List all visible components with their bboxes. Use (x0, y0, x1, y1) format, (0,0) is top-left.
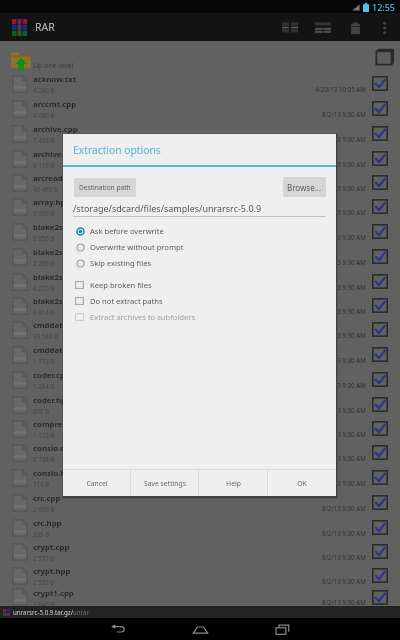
staticText: 1 264 B (33, 382, 55, 390)
staticText: 8/2/13 9:30 AM (322, 258, 366, 266)
button[interactable]: Cancel (63, 470, 130, 496)
staticText: Skip existing files (90, 258, 152, 268)
staticText: 8/2/13 9:30 AM (322, 598, 366, 606)
staticText: 4/20/13 10:05 AM (315, 85, 366, 93)
button[interactable]: Recents (260, 618, 304, 640)
staticText: consio.hpp (33, 468, 76, 479)
button[interactable]: arcread.cpp (0, 171, 400, 194)
staticText: 8/2/13 9:30 AM (322, 110, 366, 118)
staticText: OK (297, 479, 307, 488)
button[interactable]: Destination path (74, 178, 136, 197)
button[interactable]: compress.hpp (0, 417, 400, 440)
staticText: archive.cpp (33, 124, 78, 135)
button[interactable]: consio.hpp (0, 465, 400, 490)
staticText: archive.hpp (33, 149, 79, 160)
staticText: arcread.cpp (33, 173, 79, 184)
button[interactable]: crypt.hpp (0, 563, 400, 588)
button[interactable]: Help (199, 470, 267, 496)
staticText: cmddata.cpp (33, 320, 84, 331)
staticText: 8/2/13 9:30 AM (322, 577, 366, 585)
staticText: cmddata.hpp (33, 345, 85, 356)
button[interactable]: crc.hpp (0, 515, 400, 540)
button[interactable]: Sort (306, 14, 339, 41)
staticText: 8/2/13 9:30 AM (322, 529, 366, 537)
button[interactable]: acknow.txt (0, 71, 400, 96)
staticText: crc.hpp (33, 518, 62, 529)
button[interactable]: OK (268, 470, 336, 496)
staticText: acknow.txt (33, 74, 77, 85)
staticText: 4 080 B (33, 111, 55, 119)
button[interactable]: coder.cpp (0, 367, 400, 392)
staticText: crc.cpp (33, 493, 61, 504)
staticText: 8/2/13 9:30 AM (322, 208, 366, 216)
staticText: 8/2/13 9:30 AM (322, 233, 366, 241)
button[interactable]: Up one level (0, 41, 400, 71)
staticText: Save settings (144, 479, 186, 488)
button[interactable]: Delete (339, 14, 371, 41)
button[interactable]: coder.hpp (0, 392, 400, 417)
staticText: 8/2/13 9:30 AM (322, 283, 366, 291)
staticText: 8/2/13 9:30 AM (322, 381, 366, 389)
button[interactable]: Keep broken files (63, 277, 336, 293)
staticText: consio.cpp (33, 443, 75, 454)
button[interactable]: array.hpp (0, 194, 400, 219)
staticText: 7 468 B (33, 136, 55, 144)
staticText: unrarsrc-5.0.9.tar.gz/ (13, 608, 73, 616)
staticText: 8/2/13 9:30 AM (322, 430, 366, 438)
button[interactable]: Skip existing files (63, 255, 336, 271)
staticText: coder.cpp (33, 370, 70, 381)
button[interactable]: crc.cpp (0, 490, 400, 515)
staticText: Browse... (287, 182, 322, 193)
button[interactable]: archive.cpp (0, 121, 400, 146)
staticText: 1 640 B (33, 600, 55, 606)
staticText: Do not extract paths (90, 296, 163, 306)
staticText: Overwrite without prompt (90, 242, 184, 252)
button[interactable]: archive.hpp (0, 146, 400, 171)
button[interactable]: Save settings (131, 470, 198, 496)
button[interactable]: More options (371, 14, 397, 41)
button[interactable]: consio.cpp (0, 440, 400, 465)
staticText: 8/2/13 9:30 AM (322, 454, 366, 462)
button[interactable]: Select all (370, 41, 400, 71)
staticText: 8/2/13 9:30 AM (322, 356, 366, 364)
button[interactable]: Two panel view (273, 14, 306, 41)
staticText: 3 814 B (33, 308, 55, 316)
button[interactable]: blake2s.hpp (0, 244, 400, 269)
button[interactable]: blake2sp.cpp (0, 294, 400, 317)
staticText: crypt.cpp (33, 542, 70, 553)
button[interactable]: blake2s.cpp (0, 219, 400, 244)
button[interactable]: Back (96, 618, 140, 640)
button[interactable]: Overwrite without prompt (63, 239, 336, 255)
button[interactable]: crypt.cpp (0, 540, 400, 563)
button[interactable]: Ask before overwrite (63, 223, 336, 239)
staticText: 8/2/13 9:30 AM (322, 504, 366, 512)
staticText: 2 552 B (33, 578, 55, 586)
staticText: Help (226, 479, 241, 488)
button[interactable]: crypt1.cpp (0, 588, 400, 606)
button[interactable]: Browse... (283, 177, 326, 197)
staticText: Extract archives to subfolders (90, 312, 196, 322)
staticText: blake2s.hpp (33, 247, 80, 258)
staticText: 670 B (33, 407, 50, 415)
staticText: 8/2/13 9:30 AM (322, 184, 366, 192)
staticText: Destination path (79, 183, 131, 192)
staticText: Extraction options (73, 143, 161, 157)
button[interactable]: blake2s_sse.cpp (0, 269, 400, 294)
staticText: blake2sp.cpp (33, 296, 84, 307)
staticText: crypt.hpp (33, 566, 71, 577)
staticText: 8/2/13 9:30 AM (322, 135, 366, 143)
button[interactable]: Extract archives to subfolders (63, 309, 336, 325)
staticText: 4 116 B (33, 161, 55, 169)
staticText: 5 056 B (33, 234, 55, 242)
staticText: 8 738 B (33, 455, 55, 463)
button[interactable]: cmddata.cpp (0, 317, 400, 342)
button[interactable]: Do not extract paths (63, 293, 336, 309)
staticText: blake2s.cpp (33, 222, 79, 233)
button[interactable]: Home (178, 618, 222, 640)
button[interactable]: arccmt.cpp (0, 96, 400, 121)
staticText: RAR (35, 20, 55, 34)
button[interactable]: cmddata.hpp (0, 342, 400, 367)
staticText: 8/2/13 9:30 AM (322, 479, 366, 487)
staticText: 2 289 B (33, 259, 55, 267)
staticText: 3 066 B (33, 209, 55, 217)
